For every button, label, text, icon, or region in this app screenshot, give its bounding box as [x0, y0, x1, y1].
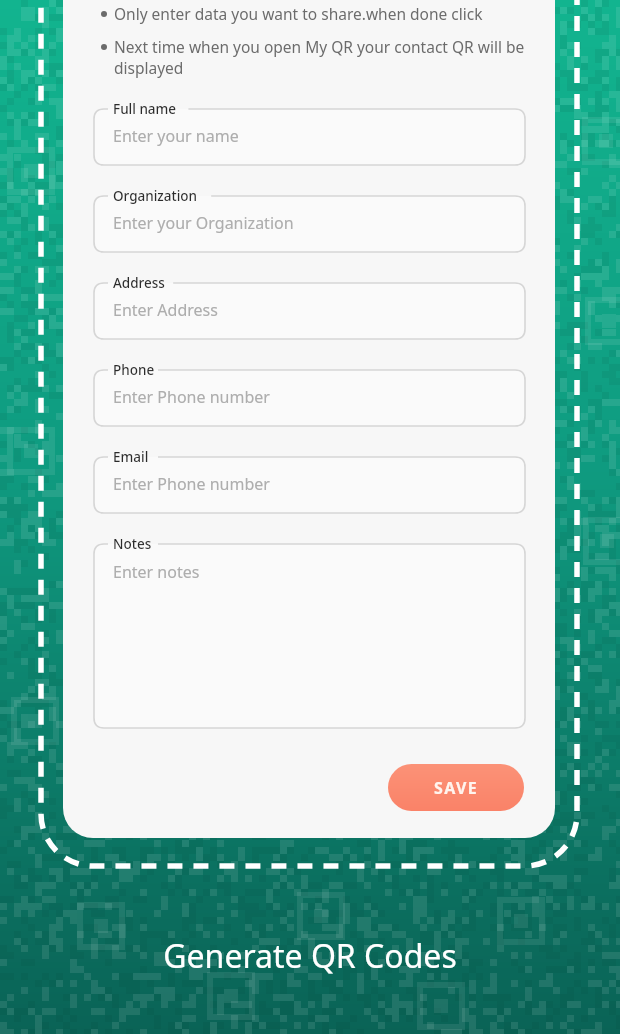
staticText: Email: [113, 448, 149, 466]
button[interactable]: Full name: [94, 100, 525, 165]
staticText: Address: [113, 274, 165, 292]
button[interactable]: SAVE: [388, 764, 524, 811]
button[interactable]: Notes: [94, 535, 525, 728]
staticText: Notes: [113, 535, 152, 553]
button[interactable]: Email: [94, 448, 525, 513]
staticText: Enter Phone number: [113, 386, 270, 408]
staticText: Enter your Organization: [113, 212, 294, 234]
staticText: Only enter data you want to share.when d…: [114, 3, 483, 24]
staticText: Enter notes: [113, 561, 200, 583]
staticText: SAVE: [434, 777, 479, 799]
staticText: Next time when you open My QR your conta…: [114, 36, 535, 79]
staticText: Phone: [113, 361, 155, 379]
staticText: Enter Address: [113, 299, 218, 321]
staticText: Enter your name: [113, 125, 239, 147]
staticText: Enter Phone number: [113, 473, 270, 495]
button[interactable]: Address: [94, 274, 525, 339]
staticText: Organization: [113, 187, 198, 205]
staticText: Generate QR Codes: [0, 934, 620, 978]
button[interactable]: Phone: [94, 361, 525, 426]
button[interactable]: Organization: [94, 187, 525, 252]
staticText: Full name: [113, 100, 177, 118]
